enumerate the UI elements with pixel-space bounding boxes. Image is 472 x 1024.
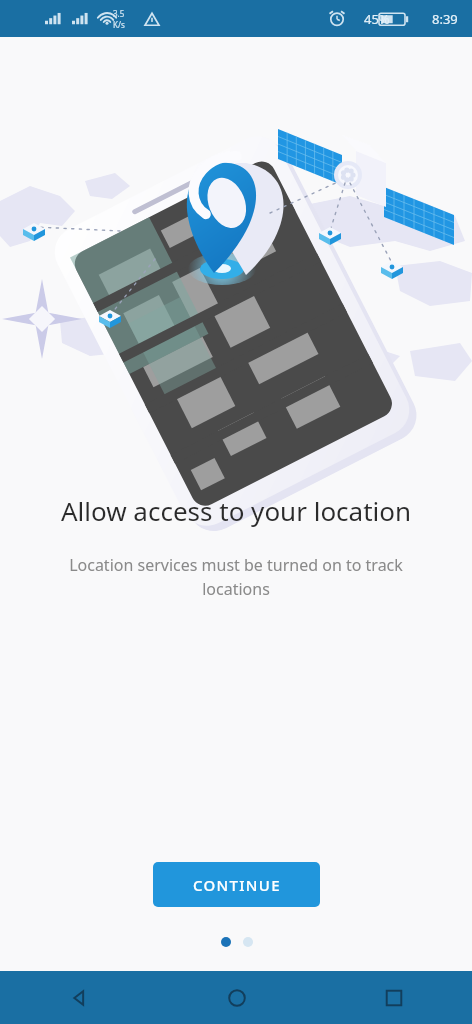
button[interactable]: Home: [158, 971, 315, 1024]
button[interactable]: Back: [0, 971, 158, 1024]
button[interactable]: [243, 937, 253, 947]
staticText: K/s: [113, 19, 125, 30]
staticText: CONTINUE: [193, 875, 281, 895]
staticText: Allow access to your location: [48, 493, 424, 528]
button[interactable]: [221, 937, 231, 947]
staticText: 8:39: [432, 10, 458, 28]
staticText: 3.5: [113, 8, 125, 19]
button[interactable]: CONTINUE: [153, 862, 320, 907]
staticText: Location services must be turned on to t…: [58, 554, 414, 600]
staticText: 45%: [364, 10, 390, 28]
button[interactable]: Recents: [315, 971, 472, 1024]
